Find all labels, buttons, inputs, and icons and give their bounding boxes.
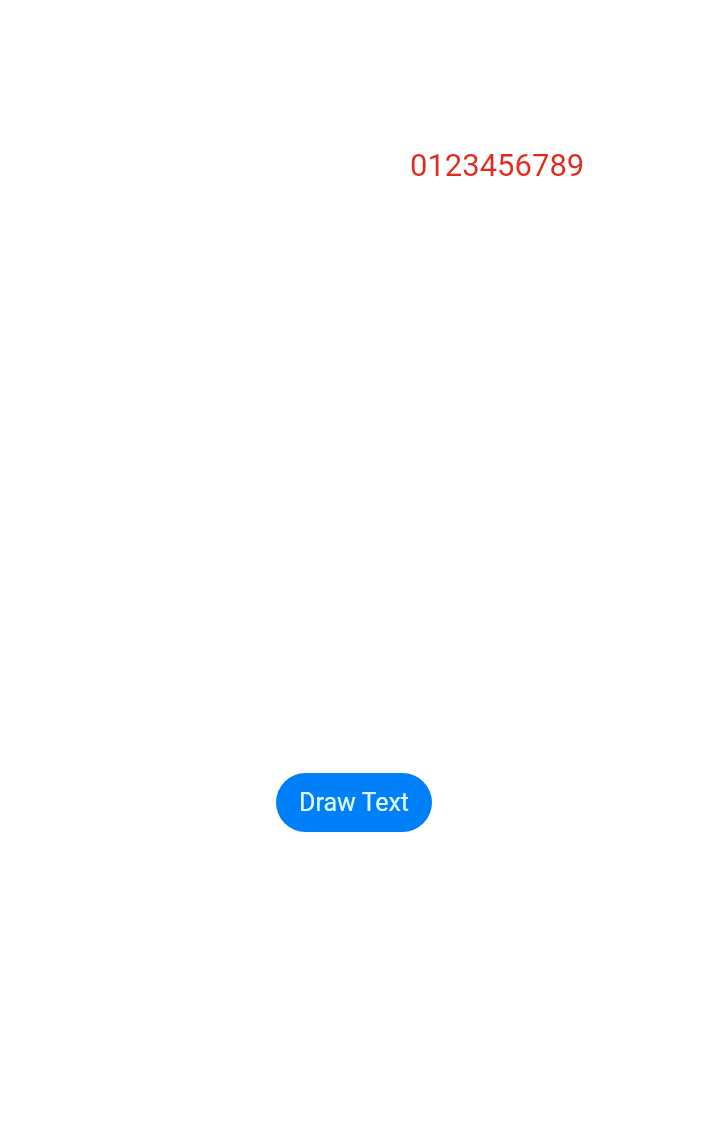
staticText: Draw Text (299, 788, 410, 817)
button[interactable]: Draw Text (276, 773, 432, 832)
staticText: 0123456789 (410, 147, 585, 183)
